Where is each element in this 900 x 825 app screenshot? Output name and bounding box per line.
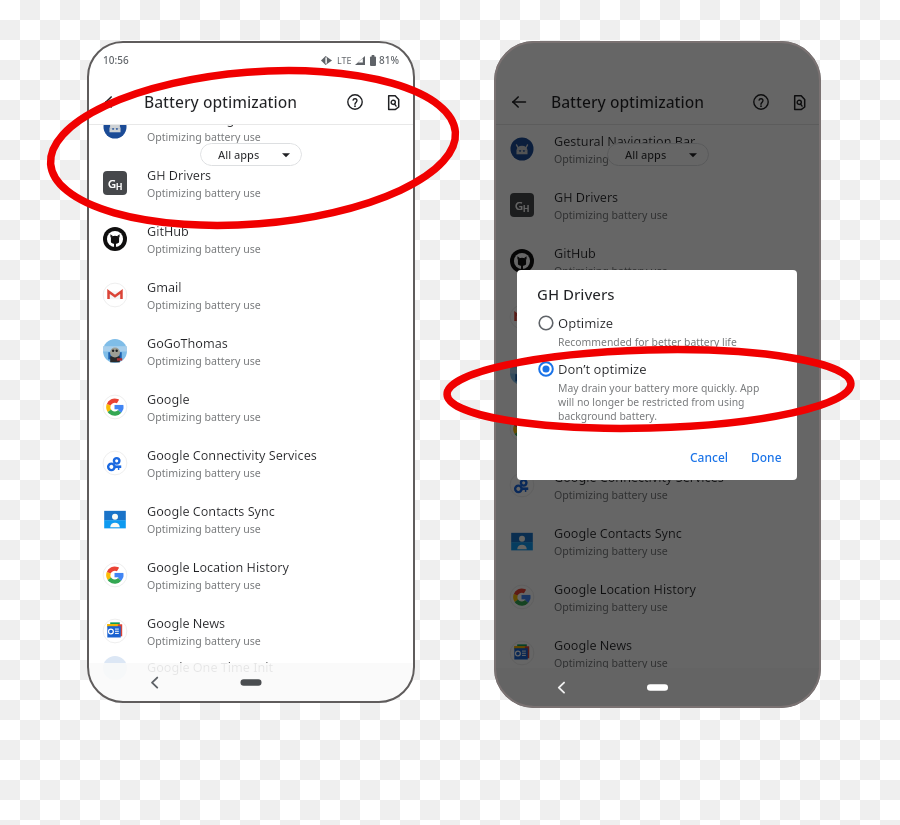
staticText: Google Location History bbox=[554, 581, 696, 598]
button[interactable]: GitHub bbox=[87, 211, 415, 267]
button[interactable]: Google Contacts Sync bbox=[87, 491, 415, 547]
button[interactable]: Google Connectivity Services bbox=[87, 435, 415, 491]
staticText: GitHub bbox=[554, 245, 596, 262]
staticText: Optimizing battery use bbox=[147, 130, 261, 144]
staticText: Google Location History bbox=[147, 559, 289, 576]
button[interactable]: Don’t optimize bbox=[517, 360, 797, 423]
button[interactable]: Google News bbox=[87, 603, 415, 659]
staticText: May drain your battery more quickly. App… bbox=[558, 381, 775, 423]
staticText: Google bbox=[554, 413, 597, 430]
staticText: GH Drivers bbox=[537, 284, 615, 304]
button[interactable]: Google Location History bbox=[494, 569, 821, 625]
button[interactable]: Google Connectivity Services bbox=[494, 457, 821, 513]
staticText: Optimizing battery use bbox=[554, 320, 668, 334]
button[interactable]: GoGoThomas bbox=[87, 323, 415, 379]
staticText: 10:56 bbox=[103, 53, 129, 67]
button[interactable]: Google Contacts Sync bbox=[494, 513, 821, 569]
staticText: Don’t optimize bbox=[558, 360, 647, 378]
staticText: Gestural Navigation Bar bbox=[147, 125, 289, 128]
staticText: Optimizing battery use bbox=[147, 242, 261, 256]
staticText: Optimizing battery use bbox=[147, 634, 261, 648]
staticText: All apps bbox=[218, 147, 260, 162]
staticText: Gmail bbox=[147, 279, 182, 296]
staticText: Optimizing battery use bbox=[554, 264, 668, 278]
staticText: Google News bbox=[554, 637, 633, 654]
button[interactable]: Gmail bbox=[494, 289, 821, 345]
button[interactable]: Help bbox=[748, 89, 774, 115]
staticText: Optimizing battery use bbox=[554, 656, 668, 670]
staticText: G bbox=[108, 176, 116, 191]
button[interactable]: Gestural Navigation Bar bbox=[87, 125, 415, 155]
button[interactable]: G bbox=[494, 177, 821, 233]
staticText: Optimizing battery use bbox=[147, 354, 261, 368]
staticText: Cancel bbox=[690, 449, 729, 465]
staticText: Google Connectivity Services bbox=[554, 469, 724, 486]
staticText: Optimizing battery use bbox=[147, 410, 261, 424]
staticText: Optimizing battery use bbox=[554, 600, 668, 614]
staticText: Optimizing battery use bbox=[554, 488, 668, 502]
staticText: All apps bbox=[625, 147, 667, 162]
button[interactable]: GoGoThomas bbox=[494, 345, 821, 401]
staticText: H bbox=[116, 181, 123, 193]
staticText: Optimizing battery use bbox=[147, 186, 261, 200]
staticText: Google bbox=[147, 391, 190, 408]
staticText: Optimizing battery use bbox=[147, 578, 261, 592]
button[interactable]: Optimize bbox=[517, 314, 797, 349]
button[interactable]: Search in page bbox=[786, 89, 812, 115]
staticText: Google News bbox=[147, 615, 226, 632]
staticText: GitHub bbox=[147, 223, 189, 240]
button[interactable]: Google One Time Init bbox=[87, 659, 415, 677]
button[interactable]: Cancel bbox=[684, 446, 735, 468]
button[interactable]: Back bbox=[99, 89, 125, 115]
staticText: 81% bbox=[379, 53, 399, 67]
staticText: Gestural Navigation Bar bbox=[554, 133, 696, 150]
staticText: Optimizing battery use bbox=[554, 544, 668, 558]
staticText: Recommended for better battery life bbox=[558, 335, 737, 349]
button[interactable]: G bbox=[87, 155, 415, 211]
staticText: Battery optimization bbox=[144, 91, 298, 112]
staticText: Battery optimization bbox=[551, 91, 705, 112]
staticText: Optimize bbox=[558, 314, 614, 332]
staticText: Optimizing battery use bbox=[554, 432, 668, 446]
staticText: Optimizing battery use bbox=[147, 466, 261, 480]
button[interactable]: Google Location History bbox=[87, 547, 415, 603]
staticText: Optimizing battery use bbox=[554, 152, 668, 166]
button[interactable]: All apps bbox=[607, 143, 709, 166]
staticText: Done bbox=[751, 449, 782, 465]
button[interactable]: Done bbox=[745, 446, 788, 468]
button[interactable]: Google bbox=[87, 379, 415, 435]
staticText: GH Drivers bbox=[147, 167, 212, 184]
staticText: Google One Time Init bbox=[147, 659, 274, 676]
button[interactable]: Help bbox=[342, 89, 368, 115]
staticText: Google Contacts Sync bbox=[147, 503, 275, 520]
button[interactable]: Search in page bbox=[380, 89, 406, 115]
button[interactable]: GitHub bbox=[494, 233, 821, 289]
staticText: H bbox=[523, 203, 530, 215]
staticText: G bbox=[515, 198, 523, 213]
staticText: Google One Time Init bbox=[554, 681, 681, 698]
staticText: Optimizing battery use bbox=[147, 298, 261, 312]
button[interactable]: Gestural Navigation Bar bbox=[494, 125, 821, 177]
staticText: GoGoThomas bbox=[554, 357, 635, 374]
staticText: Google Contacts Sync bbox=[554, 525, 682, 542]
button[interactable]: Google bbox=[494, 401, 821, 457]
button[interactable]: Gmail bbox=[87, 267, 415, 323]
button[interactable]: All apps bbox=[200, 143, 302, 166]
staticText: Optimizing battery use bbox=[554, 208, 668, 222]
button[interactable]: Google One Time Init bbox=[494, 681, 821, 704]
staticText: GoGoThomas bbox=[147, 335, 228, 352]
staticText: Optimizing battery use bbox=[554, 376, 668, 390]
staticText: GH Drivers bbox=[554, 189, 619, 206]
staticText: LTE bbox=[337, 54, 352, 66]
button[interactable]: Back bbox=[506, 89, 532, 115]
staticText: Google Connectivity Services bbox=[147, 447, 317, 464]
staticText: Optimizing battery use bbox=[147, 522, 261, 536]
button[interactable]: Google News bbox=[494, 625, 821, 681]
